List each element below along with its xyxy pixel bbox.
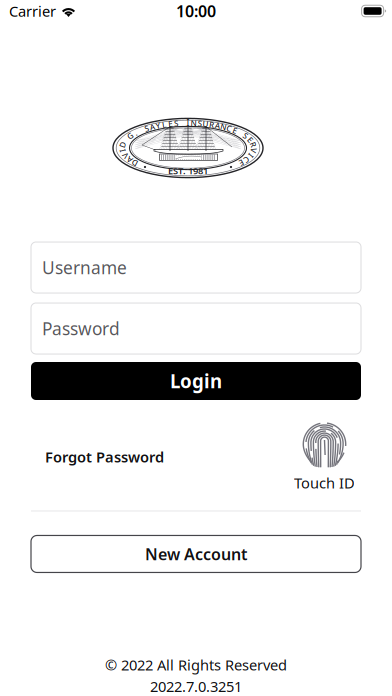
staticText: R bbox=[209, 119, 214, 130]
button[interactable]: Touch ID bbox=[294, 421, 355, 492]
staticText: Carrier bbox=[9, 1, 56, 21]
staticText: D bbox=[132, 157, 138, 168]
staticText: . bbox=[134, 127, 136, 138]
staticText: S bbox=[243, 130, 247, 141]
staticText: A bbox=[150, 121, 155, 132]
staticText: G bbox=[127, 130, 133, 141]
staticText: R bbox=[251, 139, 256, 150]
staticText: V bbox=[251, 145, 256, 156]
staticText: EST. 1981 bbox=[168, 164, 208, 177]
staticText: V bbox=[123, 150, 128, 161]
staticText: N bbox=[220, 121, 226, 132]
staticText: I bbox=[121, 145, 124, 156]
staticText bbox=[125, 134, 127, 145]
staticText: U bbox=[202, 118, 208, 129]
staticText: L bbox=[162, 119, 166, 130]
staticText: 10:00 bbox=[176, 0, 216, 22]
staticText bbox=[181, 118, 183, 128]
staticText: New Account bbox=[145, 543, 247, 565]
staticText: I bbox=[186, 117, 189, 128]
staticText: Forgot Password bbox=[45, 447, 164, 466]
staticText: Username bbox=[42, 256, 127, 279]
staticText: © 2022 All Rights Reserved bbox=[105, 655, 287, 674]
staticText: C bbox=[227, 123, 232, 134]
staticText: 2022.7.0.3251 bbox=[150, 676, 242, 696]
staticText: S bbox=[174, 118, 178, 128]
staticText: Password bbox=[42, 317, 120, 340]
staticText: E bbox=[240, 157, 244, 168]
staticText: I bbox=[249, 150, 252, 161]
staticText: Y bbox=[156, 120, 161, 131]
staticText bbox=[239, 127, 241, 138]
button[interactable]: Forgot Password bbox=[45, 439, 164, 474]
staticText bbox=[140, 125, 142, 136]
staticText: S bbox=[198, 118, 202, 128]
staticText: S bbox=[145, 123, 149, 134]
staticText: E bbox=[168, 118, 172, 129]
staticText: Touch ID bbox=[294, 473, 355, 492]
button[interactable]: Login bbox=[31, 362, 361, 400]
staticText: E bbox=[248, 134, 252, 145]
staticText: A bbox=[127, 154, 132, 165]
staticText: N bbox=[191, 118, 197, 128]
staticText: E bbox=[233, 125, 237, 135]
staticText: C bbox=[244, 154, 249, 165]
staticText: D bbox=[120, 139, 126, 150]
staticText: A bbox=[215, 120, 220, 131]
button[interactable]: New Account bbox=[31, 535, 361, 572]
staticText: Login bbox=[170, 369, 222, 393]
